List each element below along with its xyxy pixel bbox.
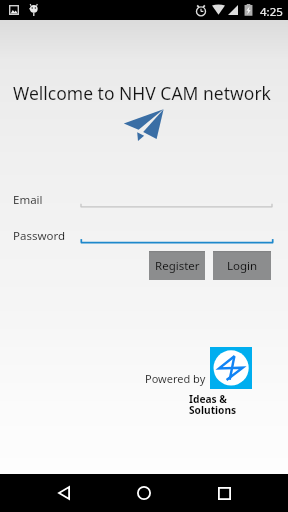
staticText: Solutions	[189, 403, 237, 417]
staticText: Password	[13, 228, 66, 244]
button[interactable]: Email input	[80, 194, 273, 210]
button[interactable]: Password input	[80, 230, 274, 246]
button[interactable]: Recent apps	[203, 474, 245, 512]
staticText: Powered by	[145, 371, 206, 386]
staticText: Ideas &	[189, 392, 227, 406]
staticText: Login	[227, 258, 258, 274]
button[interactable]: Login	[213, 251, 271, 280]
staticText: Email	[13, 192, 43, 208]
button[interactable]: Home	[123, 474, 165, 512]
staticText: Wellcome to NHV CAM network	[13, 81, 271, 105]
button[interactable]: Register	[149, 251, 205, 280]
button[interactable]: Back	[43, 474, 85, 512]
staticText: 4:25	[260, 4, 283, 20]
staticText: Register	[155, 258, 200, 274]
